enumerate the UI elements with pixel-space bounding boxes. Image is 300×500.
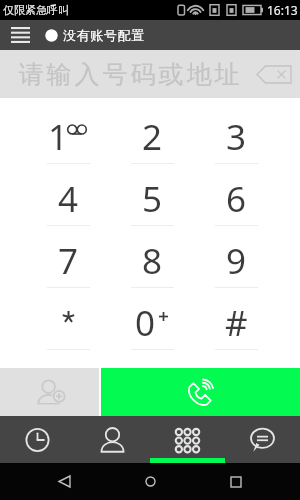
button[interactable]: Back	[42, 463, 86, 500]
button[interactable]: 1	[26, 102, 110, 164]
button[interactable]: 6	[194, 164, 278, 226]
button[interactable]: Call	[101, 368, 300, 416]
button[interactable]: Contacts	[75, 416, 150, 463]
staticText: 请输入号码或地址	[17, 59, 241, 90]
staticText: 0	[135, 299, 156, 347]
staticText: 1	[48, 113, 69, 161]
button[interactable]: 8	[110, 226, 194, 288]
staticText: 3	[226, 113, 247, 161]
button[interactable]: Recent apps	[214, 463, 258, 500]
button[interactable]: 3	[194, 102, 278, 164]
button[interactable]: 4	[26, 164, 110, 226]
staticText: 2	[142, 113, 163, 161]
button[interactable]: Backspace	[248, 50, 300, 98]
button[interactable]: Home	[128, 463, 172, 500]
button[interactable]: Messages	[225, 416, 300, 463]
button[interactable]: Menu	[0, 20, 40, 50]
button[interactable]: Recents	[0, 416, 75, 463]
staticText: 8	[142, 237, 163, 285]
staticText: 4	[58, 175, 79, 223]
button[interactable]: #	[194, 288, 278, 350]
staticText: 5	[142, 175, 163, 223]
button[interactable]: 5	[110, 164, 194, 226]
button[interactable]: Add contact	[0, 368, 99, 416]
staticText: 没有账号配置	[63, 27, 145, 43]
staticText: 9	[226, 237, 247, 285]
staticText: 7	[58, 237, 79, 285]
staticText: #	[225, 299, 248, 347]
staticText: 16:13	[267, 2, 298, 18]
button[interactable]: Dialpad	[150, 416, 225, 463]
button[interactable]: 7	[26, 226, 110, 288]
button[interactable]: 9	[194, 226, 278, 288]
staticText: 仅限紧急呼叫	[3, 3, 69, 17]
staticText: 6	[226, 175, 247, 223]
button[interactable]: 0	[110, 288, 194, 350]
button[interactable]: 2	[110, 102, 194, 164]
button[interactable]	[26, 288, 110, 350]
